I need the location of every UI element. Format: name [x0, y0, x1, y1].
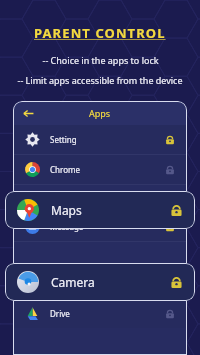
staticText: Contact — [50, 278, 79, 289]
staticText: Chrome — [50, 164, 80, 175]
staticText: -- Choice in the apps to lock — [42, 54, 159, 66]
staticText: Camera — [51, 274, 95, 290]
button[interactable]: Camera — [5, 263, 195, 301]
button[interactable]: Contact — [13, 269, 187, 298]
button[interactable]: Drive — [13, 299, 187, 328]
staticText: Drive — [50, 308, 70, 319]
staticText: Apps — [89, 107, 111, 119]
button[interactable]: Chrome — [13, 155, 187, 184]
button[interactable]: Back — [18, 103, 38, 123]
staticText: Message — [50, 221, 84, 232]
staticText: -- Limit apps accessible from the device — [17, 74, 183, 86]
button[interactable]: Maps — [5, 191, 195, 229]
staticText: Setting — [50, 134, 77, 145]
staticText: Maps — [51, 202, 82, 218]
button[interactable]: Message — [13, 212, 187, 241]
button[interactable]: Setting — [13, 125, 187, 154]
staticText: PARENT CONTROL — [34, 24, 166, 42]
